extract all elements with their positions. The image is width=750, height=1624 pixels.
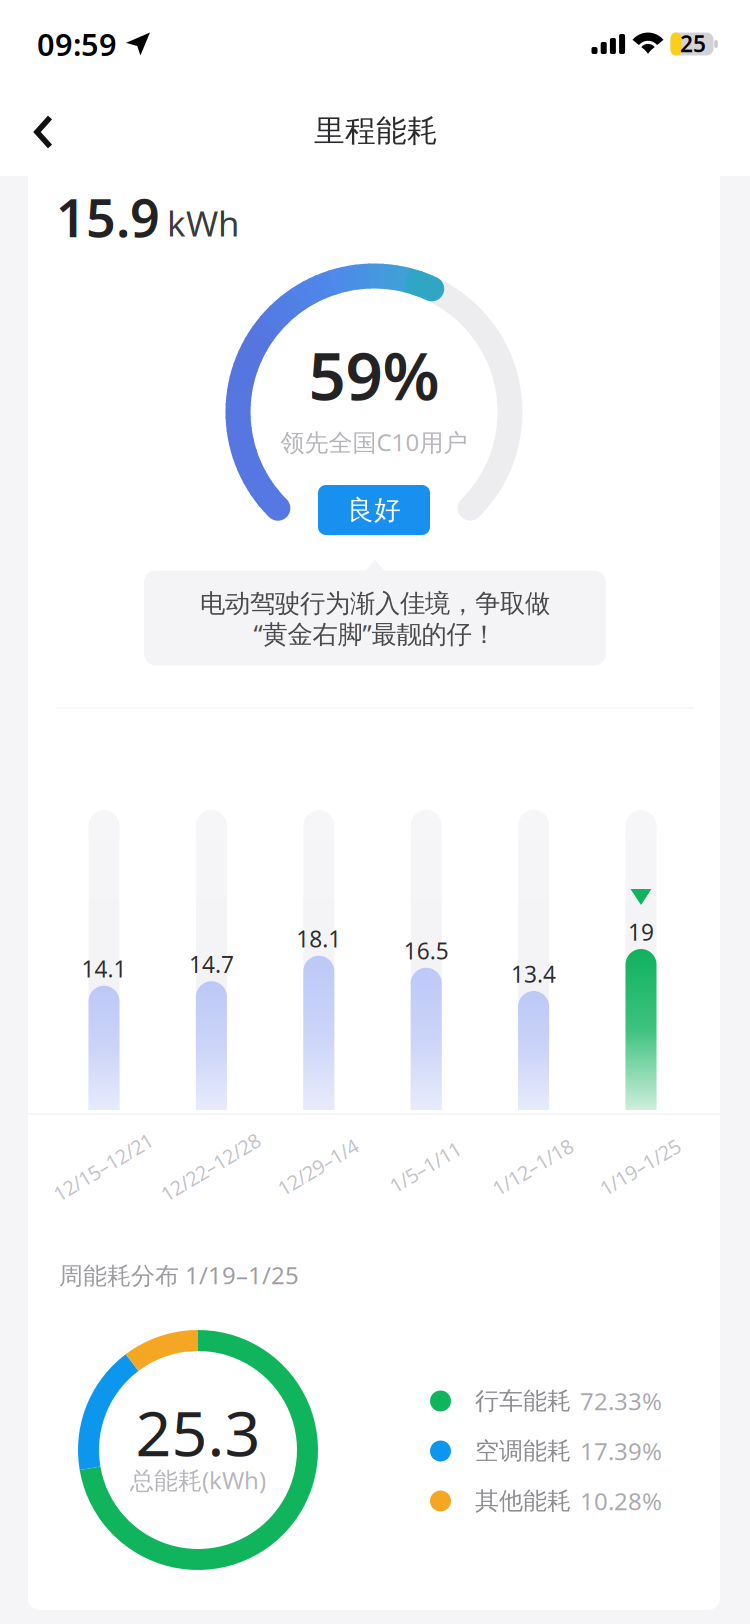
staticText: 总能耗(kWh)	[130, 1464, 266, 1496]
staticText: 15.9	[56, 182, 160, 252]
staticText: 空调能耗	[475, 1436, 571, 1466]
staticText: 周能耗分布 1/19–1/25	[59, 1259, 299, 1291]
staticText: 09:59	[37, 24, 117, 64]
staticText: “黄金右脚”最靓的仔！	[253, 617, 496, 650]
button[interactable]: 良好	[318, 485, 430, 535]
staticText: 17.39%	[580, 1435, 662, 1467]
staticText: 59%	[308, 332, 439, 418]
staticText: 12/22–12/28	[154, 1154, 266, 1180]
staticText: 1/19–1/25	[595, 1154, 685, 1180]
button[interactable]: Back	[9, 93, 78, 170]
staticText: 14.1	[81, 954, 126, 984]
staticText: 良好	[347, 494, 401, 526]
staticText: 18.1	[296, 924, 341, 954]
staticText: 13.4	[511, 959, 556, 989]
staticText: 12/29–1/4	[273, 1154, 363, 1180]
staticText: 1/5–1/11	[386, 1154, 465, 1180]
staticText: 25.3	[135, 1390, 260, 1474]
staticText: 16.5	[404, 936, 449, 966]
staticText: kWh	[167, 200, 239, 246]
staticText: 19	[628, 917, 654, 947]
staticText: 领先全国C10用户	[280, 426, 467, 458]
staticText: 其他能耗	[475, 1486, 571, 1516]
staticText: 1/12–1/18	[488, 1154, 578, 1180]
staticText: 10.28%	[580, 1485, 662, 1517]
staticText: 行车能耗	[475, 1386, 571, 1416]
staticText: 14.7	[189, 949, 234, 979]
staticText: 里程能耗	[314, 112, 438, 150]
staticText: 72.33%	[580, 1385, 662, 1417]
staticText: 25	[680, 28, 706, 58]
staticText: 12/15–12/21	[47, 1154, 159, 1180]
staticText: 电动驾驶行为渐入佳境，争取做	[200, 588, 550, 619]
